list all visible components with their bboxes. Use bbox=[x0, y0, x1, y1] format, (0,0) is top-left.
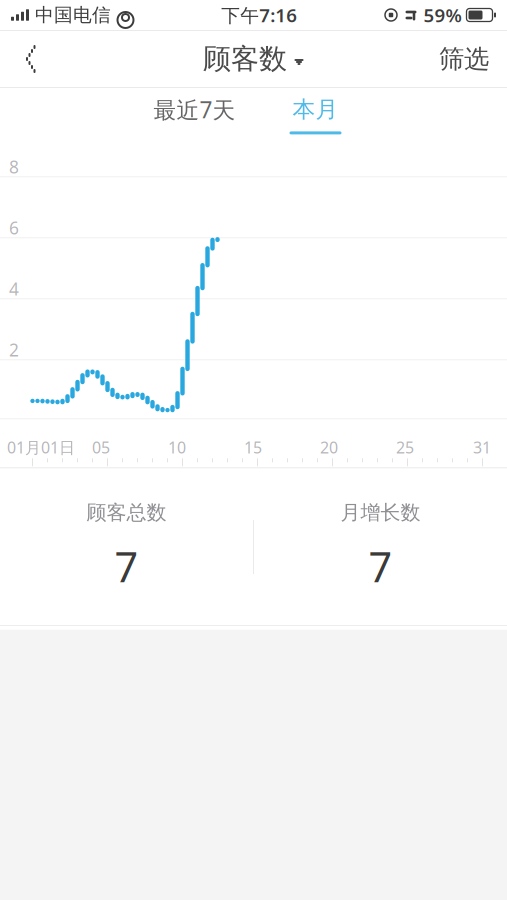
staticText: 本月 bbox=[292, 96, 338, 123]
staticText: 月增长数 bbox=[340, 500, 420, 525]
staticText: 中国电信 bbox=[35, 3, 111, 26]
staticText: 59% bbox=[423, 3, 461, 27]
staticText: 20 bbox=[320, 437, 338, 458]
button[interactable]: 筛选 bbox=[421, 31, 507, 87]
staticText: 最近7天 bbox=[153, 94, 235, 124]
staticText: 顾客总数 bbox=[86, 500, 166, 525]
staticText: 25 bbox=[396, 437, 414, 458]
staticText: 15 bbox=[244, 437, 262, 458]
staticText: 01月01日 bbox=[7, 437, 75, 458]
staticText: 10 bbox=[168, 437, 186, 458]
button[interactable]: 返回 bbox=[0, 31, 54, 87]
staticText: 05 bbox=[92, 437, 110, 458]
staticText: 下午7:16 bbox=[221, 3, 297, 27]
staticText: 2 bbox=[9, 338, 19, 361]
button[interactable]: 本月 bbox=[256, 88, 374, 142]
staticText: 7 bbox=[368, 539, 392, 594]
staticText: 顾客数 bbox=[203, 42, 287, 76]
staticText: 6 bbox=[9, 216, 19, 239]
staticText: 筛选 bbox=[439, 43, 489, 74]
staticText: 7 bbox=[114, 539, 138, 594]
staticText: 8 bbox=[9, 155, 19, 178]
staticText: 31 bbox=[473, 437, 491, 458]
button[interactable]: 最近7天 bbox=[132, 88, 256, 142]
staticText: 4 bbox=[9, 277, 19, 300]
